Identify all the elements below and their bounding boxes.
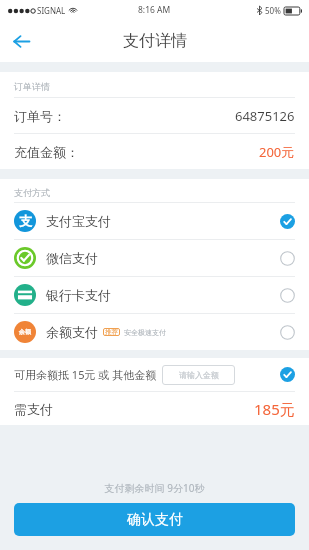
- staticText: 订单号：: [14, 108, 66, 124]
- staticText: 推荐: [105, 328, 118, 336]
- staticText: 确认支付: [127, 511, 183, 529]
- staticText: 支: [19, 213, 32, 229]
- button[interactable]: 支: [0, 203, 309, 240]
- button[interactable]: 余额: [0, 314, 309, 350]
- button[interactable]: 银行卡支付: [0, 277, 309, 314]
- staticText: 200元: [259, 143, 295, 161]
- staticText: 支付方式: [14, 187, 50, 198]
- staticText: 可用余额抵 15元 或 其他金额: [14, 367, 157, 382]
- staticText: 银行卡支付: [46, 287, 111, 303]
- staticText: 余额支付: [46, 324, 98, 340]
- staticText: 请输入金额: [179, 370, 219, 380]
- staticText: 微信支付: [46, 250, 98, 266]
- staticText: 余额: [19, 328, 31, 336]
- staticText: 需支付: [14, 401, 53, 417]
- staticText: 8:16 AM: [138, 4, 171, 16]
- staticText: 支付剩余时间 9分10秒: [0, 481, 309, 495]
- staticText: 支付详情: [123, 31, 187, 51]
- staticText: 安全极速支付: [124, 328, 166, 337]
- staticText: 充值金额：: [14, 144, 79, 160]
- button[interactable]: 可用余额抵 15元 或 其他金额: [0, 358, 309, 391]
- staticText: SIGNAL: [37, 5, 66, 16]
- staticText: 支付宝支付: [46, 213, 111, 229]
- staticText: 64875126: [235, 107, 295, 125]
- button[interactable]: 确认支付: [14, 503, 295, 536]
- staticText: 50%: [265, 5, 281, 16]
- staticText: 订单详情: [14, 81, 50, 92]
- button[interactable]: 微信支付: [0, 240, 309, 277]
- button[interactable]: Back: [0, 20, 42, 62]
- staticText: 185元: [254, 399, 295, 419]
